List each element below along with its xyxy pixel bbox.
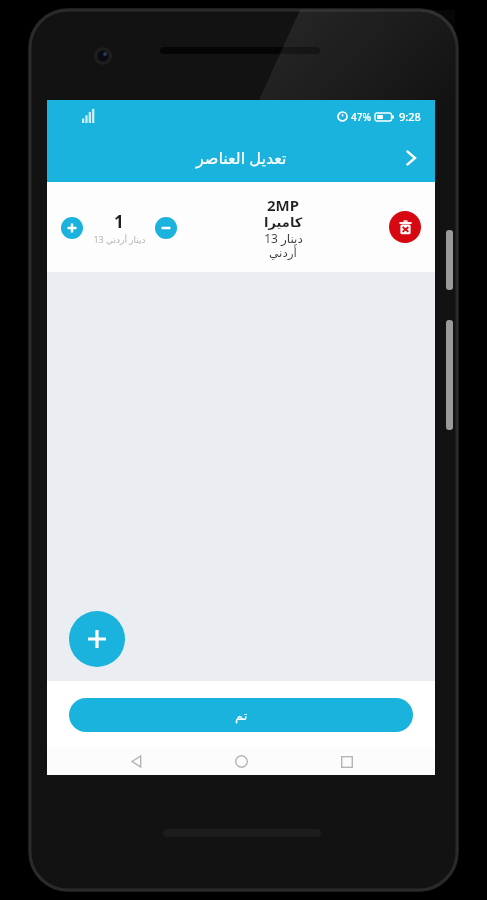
button[interactable]: Increase quantity: [47, 182, 435, 272]
button[interactable]: Increase quantity: [61, 217, 83, 239]
staticText: أردني: [269, 246, 297, 260]
staticText: كاميرا: [264, 215, 303, 230]
staticText: تعديل العناصر: [196, 147, 287, 169]
staticText: 1: [114, 210, 124, 233]
button[interactable]: Back: [119, 748, 153, 775]
button[interactable]: Delete item: [389, 211, 421, 243]
staticText: تم: [235, 708, 248, 723]
button[interactable]: Add item: [69, 611, 125, 667]
button[interactable]: Home: [224, 748, 258, 775]
button[interactable]: Forward: [387, 133, 435, 182]
button[interactable]: Decrease quantity: [155, 217, 177, 239]
staticText: 2MP: [267, 195, 300, 215]
staticText: 9:28: [399, 109, 421, 124]
staticText: 47%: [351, 110, 371, 124]
button[interactable]: Recent apps: [330, 748, 364, 775]
staticText: 13 دينار أردني: [93, 233, 146, 245]
button[interactable]: تم: [69, 698, 413, 732]
staticText: 13 دينار: [264, 230, 303, 246]
